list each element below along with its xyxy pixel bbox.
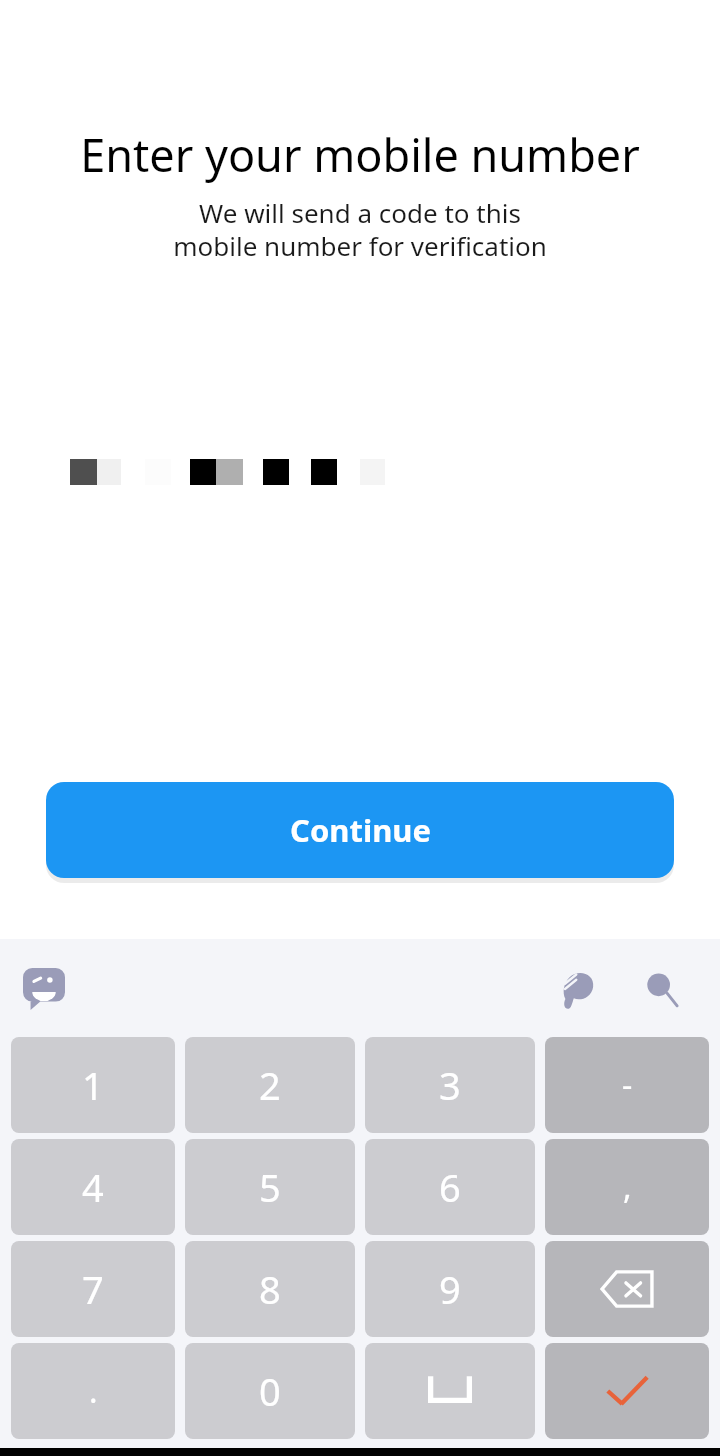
staticText: 5 — [259, 1161, 281, 1213]
button[interactable]: 2 — [185, 1037, 355, 1133]
staticText: 6 — [439, 1161, 461, 1213]
staticText: , — [623, 1165, 632, 1209]
button[interactable]: 8 — [185, 1241, 355, 1337]
staticText: - — [622, 1063, 633, 1107]
button[interactable]: Search — [636, 963, 688, 1015]
button[interactable]: Backspace — [545, 1241, 709, 1337]
button[interactable]: 4 — [11, 1139, 175, 1235]
staticText: 2 — [259, 1059, 281, 1111]
button[interactable]: 9 — [365, 1241, 535, 1337]
staticText: 1 — [82, 1059, 104, 1111]
button[interactable]: Stickers — [18, 963, 70, 1015]
staticText: 7 — [82, 1263, 104, 1315]
staticText: 4 — [82, 1161, 104, 1213]
staticText: Enter your mobile number — [16, 124, 704, 185]
staticText: 9 — [439, 1263, 461, 1315]
staticText: We will send a code to this mobile numbe… — [0, 195, 720, 264]
button[interactable]: 0 — [185, 1343, 355, 1439]
button[interactable]: Continue — [46, 782, 674, 878]
button[interactable]: 7 — [11, 1241, 175, 1337]
staticText: 3 — [439, 1059, 461, 1111]
button[interactable]: 3 — [365, 1037, 535, 1133]
button[interactable]: , — [545, 1139, 709, 1235]
button[interactable]: - — [545, 1037, 709, 1133]
button[interactable]: 1 — [11, 1037, 175, 1133]
staticText: 8 — [259, 1263, 281, 1315]
button[interactable]: Enter — [545, 1343, 709, 1439]
staticText: Continue — [290, 809, 431, 851]
button[interactable]: 5 — [185, 1139, 355, 1235]
button[interactable]: 6 — [365, 1139, 535, 1235]
staticText: . — [89, 1369, 98, 1413]
staticText: 0 — [259, 1365, 281, 1417]
button[interactable]: Space — [365, 1343, 535, 1439]
button[interactable]: Voice input — [552, 963, 604, 1015]
